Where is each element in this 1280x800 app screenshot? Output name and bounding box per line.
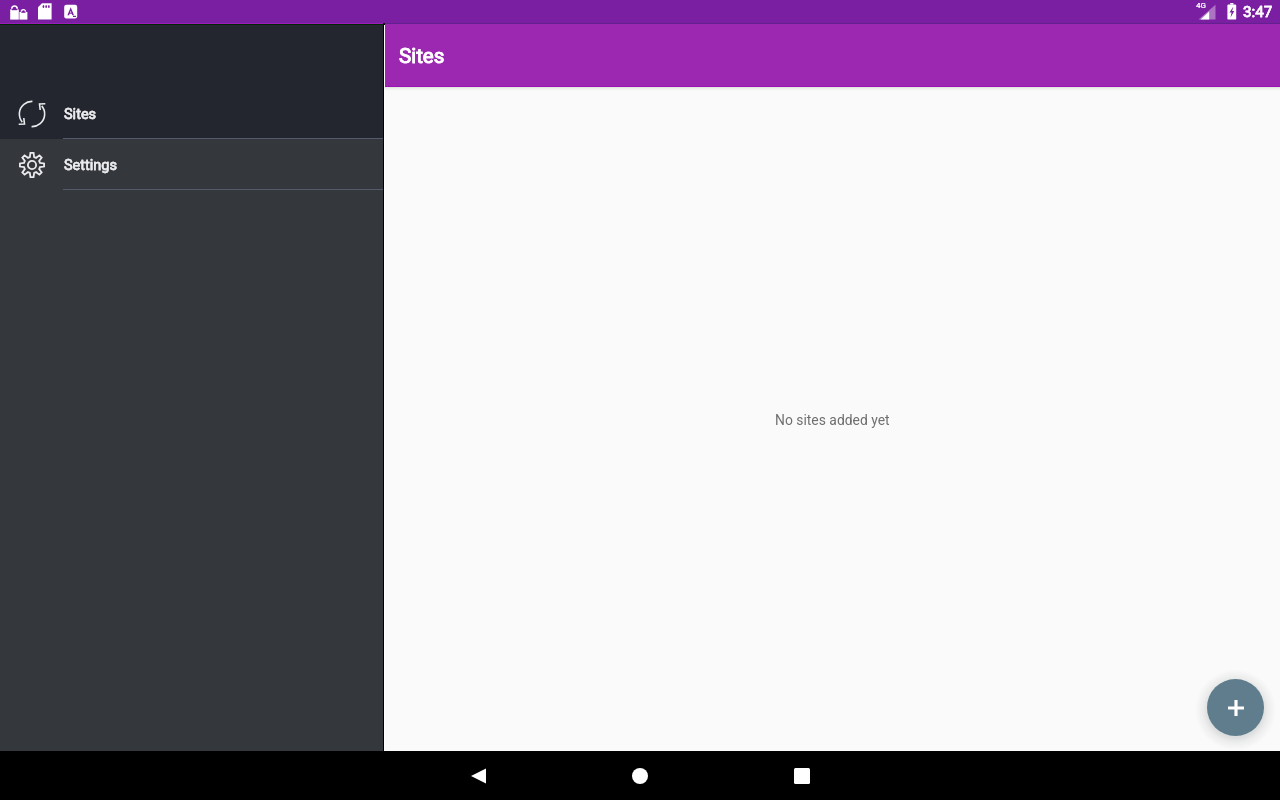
staticText: Sites — [399, 44, 445, 68]
staticText: Settings — [64, 157, 117, 174]
button[interactable]: Settings — [0, 139, 383, 190]
staticText: Sites — [64, 106, 97, 123]
button[interactable]: Sites — [0, 88, 383, 139]
staticText: 3:47 — [1243, 3, 1273, 21]
staticText: 3:47 — [1243, 3, 1273, 21]
button[interactable]: Home — [559, 751, 721, 800]
button[interactable]: Back — [397, 751, 559, 800]
staticText: 4G — [1196, 1, 1206, 10]
button[interactable]: Add site — [1207, 679, 1264, 736]
staticText: Sites — [64, 106, 97, 123]
staticText: No sites added yet — [775, 412, 890, 428]
staticText: Sites — [399, 44, 445, 68]
button[interactable]: Recents — [721, 751, 883, 800]
staticText: Settings — [64, 157, 117, 174]
